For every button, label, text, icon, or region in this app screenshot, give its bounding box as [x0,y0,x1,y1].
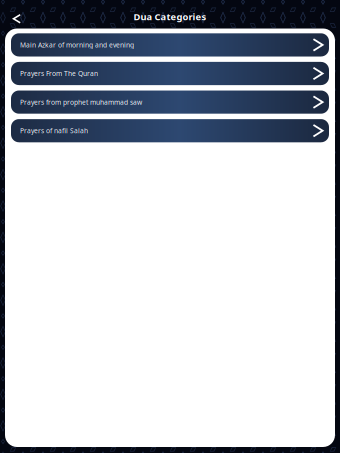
button[interactable]: Prayers From The Quran [11,62,329,85]
button[interactable]: Main Azkar of morning and evening [11,33,329,56]
button[interactable]: Prayers from prophet muhammad saw [11,90,329,114]
staticText: Prayers From The Quran [20,69,98,78]
button[interactable]: Prayers of nafil Salah [11,119,329,142]
staticText: Prayers of nafil Salah [20,126,88,135]
button[interactable]: Back [0,2,29,27]
staticText: Main Azkar of morning and evening [20,40,134,49]
staticText: Dua Categories [133,11,206,23]
staticText: Prayers from prophet muhammad saw [20,98,142,107]
